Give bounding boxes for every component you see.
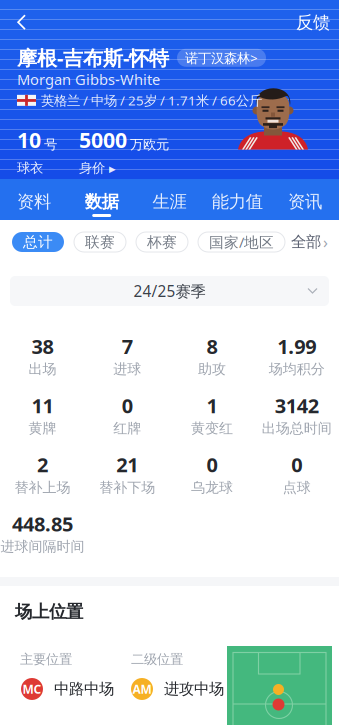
button[interactable]: 返回 — [0, 5, 44, 39]
button[interactable]: 资讯 — [271, 179, 339, 220]
button[interactable]: 数据 — [68, 179, 136, 220]
staticText: 黄牌 — [28, 420, 56, 437]
staticText: › — [323, 231, 328, 253]
staticText: 出场总时间 — [262, 420, 332, 437]
staticText: 场上位置 — [15, 601, 83, 622]
staticText: 数据 — [85, 191, 119, 212]
staticText: 2 — [37, 451, 48, 478]
staticText: MC — [22, 681, 41, 697]
staticText: 7 — [122, 333, 133, 360]
button[interactable]: AM — [131, 678, 224, 700]
staticText: 10 — [17, 125, 41, 154]
staticText: 替补上场 — [14, 479, 70, 496]
staticText: 诺丁汉森林> — [185, 49, 258, 67]
button[interactable]: 资料 — [0, 179, 68, 220]
button[interactable]: 诺丁汉森林> — [177, 49, 266, 67]
staticText: 英格兰 / 中场 / 25岁 / 1.71米 / 66公斤 — [41, 91, 262, 109]
button[interactable]: 反馈 — [287, 5, 339, 39]
staticText: 身价 ▸ — [79, 160, 116, 176]
staticText: 生涯 — [152, 191, 186, 212]
staticText: 0 — [291, 451, 302, 478]
staticText: 进球间隔时间 — [0, 538, 84, 555]
staticText: 11 — [31, 392, 53, 419]
staticText: 摩根-吉布斯-怀特 — [17, 44, 169, 71]
button[interactable]: 24/25赛季 — [10, 276, 329, 306]
staticText: 国家/地区 — [209, 232, 274, 252]
staticText: 杯赛 — [147, 233, 177, 251]
staticText: 1.99 — [277, 333, 316, 360]
staticText: 黄变红 — [191, 420, 233, 437]
staticText: 号 — [44, 136, 57, 153]
button[interactable]: 生涯 — [136, 179, 203, 220]
staticText: 进球 — [113, 361, 141, 378]
staticText: 能力值 — [212, 191, 263, 212]
button[interactable]: 杯赛 — [136, 232, 188, 252]
staticText: 总计 — [23, 233, 53, 251]
button[interactable]: 国家/地区 — [198, 232, 285, 252]
button[interactable]: MC — [21, 678, 114, 700]
staticText: 点球 — [283, 479, 311, 496]
staticText: 进攻中场 — [164, 680, 224, 698]
staticText: 448.85 — [12, 510, 73, 537]
staticText: 24/25赛季 — [133, 281, 205, 301]
button[interactable]: 总计 — [12, 232, 64, 252]
staticText: 3142 — [275, 392, 319, 419]
staticText: 中路中场 — [54, 680, 114, 698]
staticText: AM — [132, 681, 151, 697]
button[interactable]: 联赛 — [74, 232, 126, 252]
staticText: 替补下场 — [99, 479, 155, 496]
staticText: 反馈 — [296, 12, 330, 33]
staticText: 万欧元 — [130, 136, 169, 153]
staticText: 0 — [122, 392, 133, 419]
button[interactable]: 全部 — [291, 229, 328, 255]
staticText: 21 — [116, 451, 138, 478]
staticText: 乌龙球 — [191, 479, 233, 496]
staticText: 场均积分 — [269, 361, 325, 378]
staticText: 1 — [206, 392, 217, 419]
staticText: 8 — [206, 333, 217, 360]
staticText: 资讯 — [288, 191, 322, 212]
staticText: 出场 — [28, 361, 56, 378]
staticText: Morgan Gibbs-White — [17, 69, 160, 89]
staticText: 二级位置 — [131, 651, 183, 667]
staticText: 38 — [31, 333, 53, 360]
staticText: 助攻 — [198, 361, 226, 378]
staticText: 球衣 — [17, 160, 43, 176]
button[interactable]: 能力值 — [203, 179, 271, 220]
staticText: 5000 — [79, 125, 127, 154]
staticText: 0 — [206, 451, 217, 478]
staticText: 资料 — [17, 191, 51, 212]
staticText: 主要位置 — [20, 651, 72, 667]
staticText: 全部 — [291, 233, 321, 251]
staticText: 联赛 — [85, 233, 115, 251]
staticText: 红牌 — [113, 420, 141, 437]
